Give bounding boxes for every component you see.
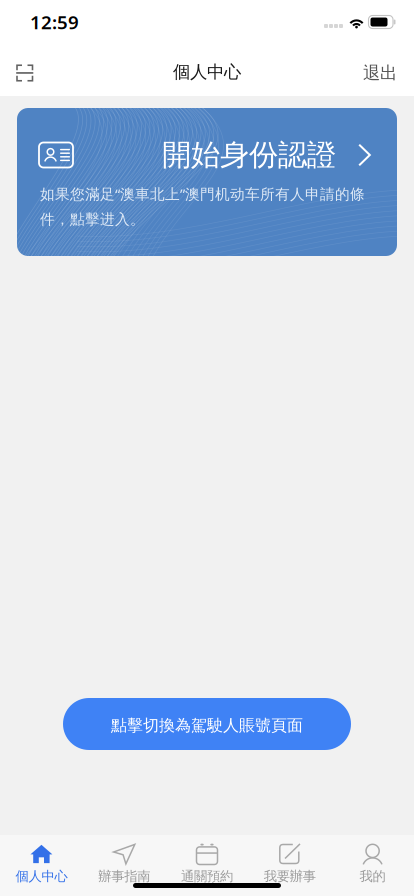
button[interactable]: 個人中心 [0, 835, 83, 896]
button[interactable]: 我要辦事 [248, 835, 331, 896]
staticText: 點擊切換為駕駛人賬號頁面 [111, 716, 303, 735]
staticText: 12:59 [30, 10, 79, 34]
button[interactable]: 開始身份認證 [17, 108, 397, 256]
staticText: 退出 [363, 62, 397, 84]
staticText: 個人中心 [173, 61, 241, 83]
button[interactable]: 點擊切換為駕駛人賬號頁面 [63, 698, 351, 750]
staticText: 辦事指南 [98, 868, 150, 884]
staticText: 我的 [360, 868, 386, 884]
button[interactable]: 辦事指南 [83, 835, 166, 896]
staticText: 我要辦事 [264, 868, 316, 884]
button[interactable]: Scan [0, 44, 47, 96]
staticText: 開始身份認證 [162, 137, 336, 173]
button[interactable]: 退出 [349, 44, 414, 96]
button[interactable]: 通關預約 [166, 835, 248, 896]
staticText: 通關預約 [181, 868, 233, 884]
button[interactable]: 我的 [331, 835, 414, 896]
staticText: 個人中心 [15, 868, 67, 884]
staticText: 如果您滿足“澳車北上”澳門机动车所有人申請的條件，點擊进入。 [40, 184, 365, 228]
